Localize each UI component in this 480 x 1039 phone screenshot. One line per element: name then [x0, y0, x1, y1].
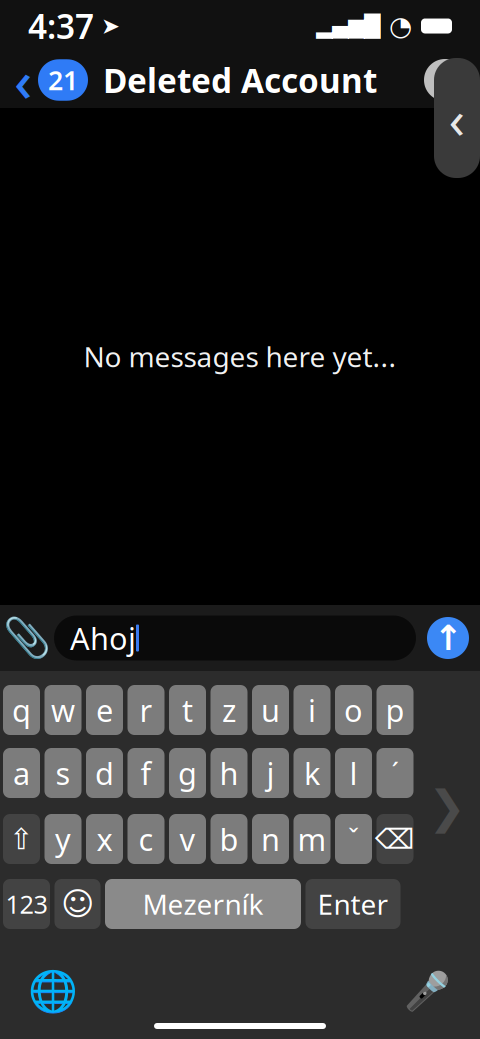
- button[interactable]: a: [3, 748, 40, 798]
- staticText: 123: [5, 887, 47, 921]
- button[interactable]: n: [252, 814, 289, 864]
- button[interactable]: y: [44, 814, 81, 864]
- button[interactable]: t: [169, 685, 206, 735]
- button[interactable]: ☺: [54, 879, 100, 929]
- staticText: y: [55, 819, 71, 859]
- staticText: p: [385, 690, 404, 730]
- staticText: ☺: [61, 886, 94, 922]
- button[interactable]: j: [252, 748, 289, 798]
- staticText: ❯: [428, 781, 466, 833]
- staticText: n: [261, 819, 280, 859]
- staticText: 🎤: [404, 970, 450, 1012]
- button[interactable]: u: [252, 685, 289, 735]
- button[interactable]: k: [293, 748, 330, 798]
- button[interactable]: Profile: [410, 52, 480, 108]
- staticText: v: [179, 819, 195, 859]
- staticText: k: [304, 753, 320, 793]
- staticText: z: [222, 690, 236, 730]
- staticText: l: [349, 753, 357, 793]
- button[interactable]: o: [335, 685, 372, 735]
- staticText: Deleted Account: [103, 58, 377, 102]
- staticText: ➤: [94, 13, 120, 39]
- button[interactable]: w: [44, 685, 81, 735]
- staticText: d: [95, 753, 114, 793]
- staticText: ⇧: [9, 822, 34, 856]
- button[interactable]: Expand panel: [434, 58, 480, 178]
- button[interactable]: Attach file: [0, 611, 54, 665]
- staticText: ◔: [389, 11, 412, 41]
- button[interactable]: l: [335, 748, 372, 798]
- staticText: r: [139, 690, 152, 730]
- button[interactable]: ˇ: [335, 814, 372, 864]
- staticText: Mezerník: [142, 885, 263, 923]
- staticText: 4:37: [28, 4, 94, 48]
- staticText: ˇ: [348, 821, 359, 857]
- button[interactable]: Change keyboard language: [22, 962, 84, 1020]
- staticText: x: [96, 819, 112, 859]
- button[interactable]: ⌫: [376, 814, 413, 864]
- staticText: f: [140, 753, 151, 793]
- button[interactable]: g: [169, 748, 206, 798]
- button[interactable]: ´: [376, 748, 413, 798]
- button[interactable]: p: [376, 685, 413, 735]
- staticText: t: [182, 690, 193, 730]
- button[interactable]: q: [3, 685, 40, 735]
- button[interactable]: Dictate: [396, 962, 458, 1020]
- staticText: No messages here yet...: [83, 338, 396, 375]
- button[interactable]: Send: [416, 611, 480, 665]
- staticText: o: [344, 690, 363, 730]
- staticText: g: [178, 753, 197, 793]
- button[interactable]: 123: [3, 879, 50, 929]
- button[interactable]: x: [86, 814, 123, 864]
- staticText: h: [219, 753, 238, 793]
- button[interactable]: h: [210, 748, 247, 798]
- staticText: i: [308, 690, 316, 730]
- staticText: 🌐: [28, 968, 78, 1014]
- staticText: j: [266, 753, 274, 793]
- button[interactable]: b: [210, 814, 247, 864]
- staticText: b: [219, 819, 238, 859]
- button[interactable]: r: [127, 685, 164, 735]
- staticText: s: [55, 753, 70, 793]
- staticText: ⌫: [375, 823, 415, 855]
- button[interactable]: e: [86, 685, 123, 735]
- button[interactable]: Enter: [305, 879, 400, 929]
- button[interactable]: i: [293, 685, 330, 735]
- button[interactable]: z: [210, 685, 247, 735]
- staticText: c: [138, 819, 153, 859]
- button[interactable]: s: [44, 748, 81, 798]
- staticText: w: [51, 690, 75, 730]
- staticText: 📎: [3, 616, 51, 660]
- button[interactable]: ⇧: [3, 814, 40, 864]
- button[interactable]: Mezerník: [105, 879, 301, 929]
- staticText: ↑: [433, 618, 462, 658]
- staticText: u: [261, 690, 280, 730]
- staticText: ▂▄▆█: [316, 14, 380, 38]
- staticText: Ahoj: [70, 618, 136, 658]
- staticText: q: [12, 690, 31, 730]
- button[interactable]: f: [127, 748, 164, 798]
- staticText: ‹: [14, 43, 32, 117]
- staticText: 21: [48, 62, 78, 98]
- staticText: a: [13, 753, 30, 793]
- button[interactable]: d: [86, 748, 123, 798]
- button[interactable]: m: [293, 814, 330, 864]
- button[interactable]: Back, 21 unread: [0, 52, 102, 108]
- button[interactable]: c: [127, 814, 164, 864]
- staticText: e: [96, 690, 113, 730]
- staticText: m: [297, 819, 326, 859]
- button[interactable]: v: [169, 814, 206, 864]
- staticText: Enter: [317, 885, 388, 923]
- staticText: ‹: [448, 83, 465, 153]
- staticText: ´: [391, 755, 398, 791]
